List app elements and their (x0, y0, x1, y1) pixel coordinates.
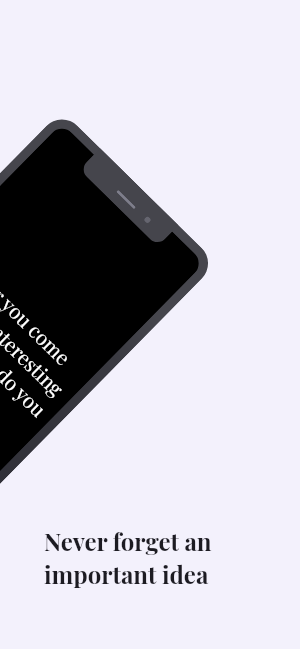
staticText: Never forget an important idea (44, 525, 212, 590)
staticText: Whenever you come up with an interesting… (0, 225, 91, 442)
